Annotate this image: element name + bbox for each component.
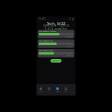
staticText: 1,850 / 2,300	[65, 36, 73, 38]
staticText: 640 / 1,200	[66, 55, 73, 57]
staticText: 3 of 4 complete	[44, 28, 67, 31]
staticText: Log Entry	[52, 60, 60, 62]
staticText: Energy Infuser 3 Mk	[39, 50, 53, 52]
staticText: Energy Infuser 1 Mk Goal	[39, 31, 56, 32]
staticText: Log	[48, 91, 51, 92]
button[interactable]: Energy Infuser 1 Mk Goal	[38, 30, 74, 38]
staticText: 980 / 1,500	[66, 45, 73, 47]
staticText: Daily Goal Progress	[43, 24, 69, 27]
button[interactable]: Energy Infuser 3 Mk	[38, 49, 74, 57]
button[interactable]: Log Entry	[50, 59, 61, 63]
staticText: Goals	[55, 91, 59, 92]
staticText: Sun, 5/22	[47, 21, 65, 26]
button[interactable]: More	[62, 84, 70, 95]
button[interactable]: Energy Infuser 2 Mk	[38, 39, 74, 48]
button[interactable]: Log	[45, 84, 53, 95]
staticText: 9:41	[39, 17, 46, 21]
button[interactable]: Goals	[53, 84, 62, 95]
staticText: ıl ▮	[69, 17, 73, 21]
staticText: More	[64, 91, 68, 92]
staticText: Energy Infuser 2 Mk	[39, 40, 53, 42]
button[interactable]: Today	[36, 84, 45, 95]
